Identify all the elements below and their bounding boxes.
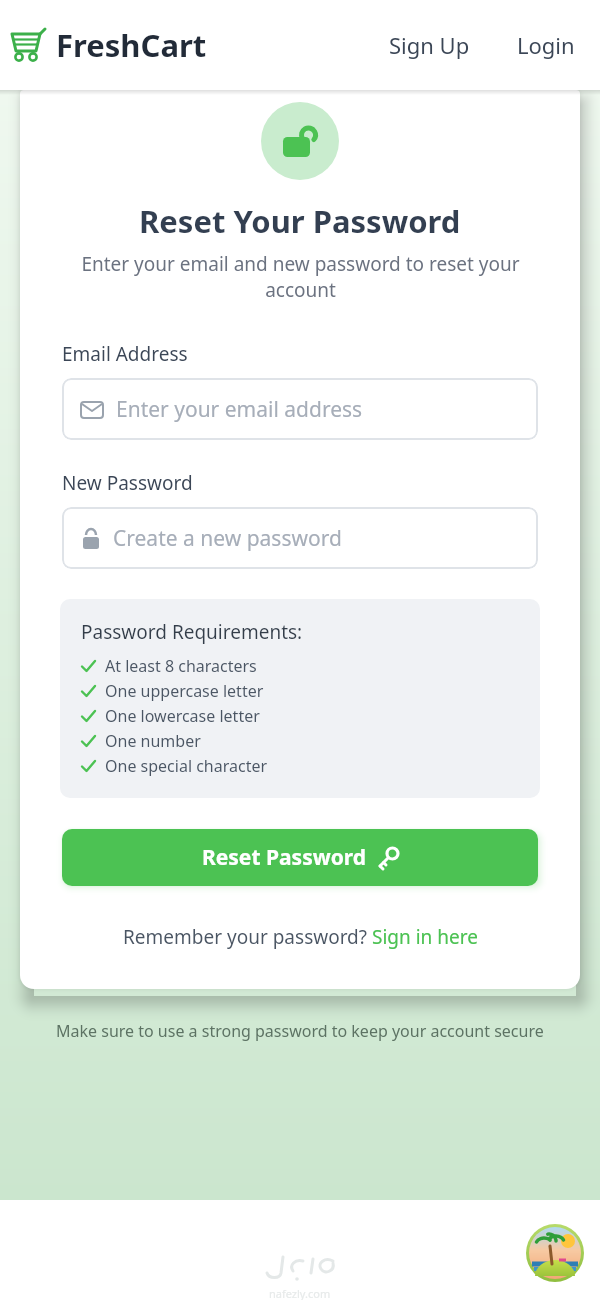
staticText: One uppercase letter	[105, 680, 264, 702]
staticText: One lowercase letter	[105, 705, 260, 727]
staticText: New Password	[62, 470, 193, 496]
staticText: Email Address	[62, 341, 188, 367]
staticText: nafezly.com	[269, 1286, 331, 1300]
staticText: Reset Password	[202, 843, 367, 872]
staticText: Enter your email and new password to res…	[81, 251, 520, 302]
staticText: Password Requirements:	[81, 619, 303, 645]
staticText: FreshCart	[56, 24, 207, 66]
staticText: Reset Your Password	[139, 200, 461, 242]
button[interactable]: Create a new password	[62, 507, 538, 569]
staticText: One number	[105, 730, 201, 752]
button[interactable]: Login	[517, 30, 575, 60]
staticText: Create a new password	[113, 524, 342, 553]
staticText: Sign Up	[389, 30, 470, 60]
button[interactable]: Reset Password	[62, 829, 538, 886]
button[interactable]: Enter your email address	[62, 378, 538, 440]
staticText: Login	[517, 30, 575, 60]
staticText: One special character	[105, 755, 268, 777]
button[interactable]: Sign Up	[389, 30, 470, 60]
staticText: Make sure to use a strong password to ke…	[56, 1020, 544, 1042]
staticText: At least 8 characters	[105, 655, 257, 677]
button[interactable]: Remember your password? Sign in here	[123, 924, 478, 950]
staticText: Enter your email address	[116, 395, 363, 424]
